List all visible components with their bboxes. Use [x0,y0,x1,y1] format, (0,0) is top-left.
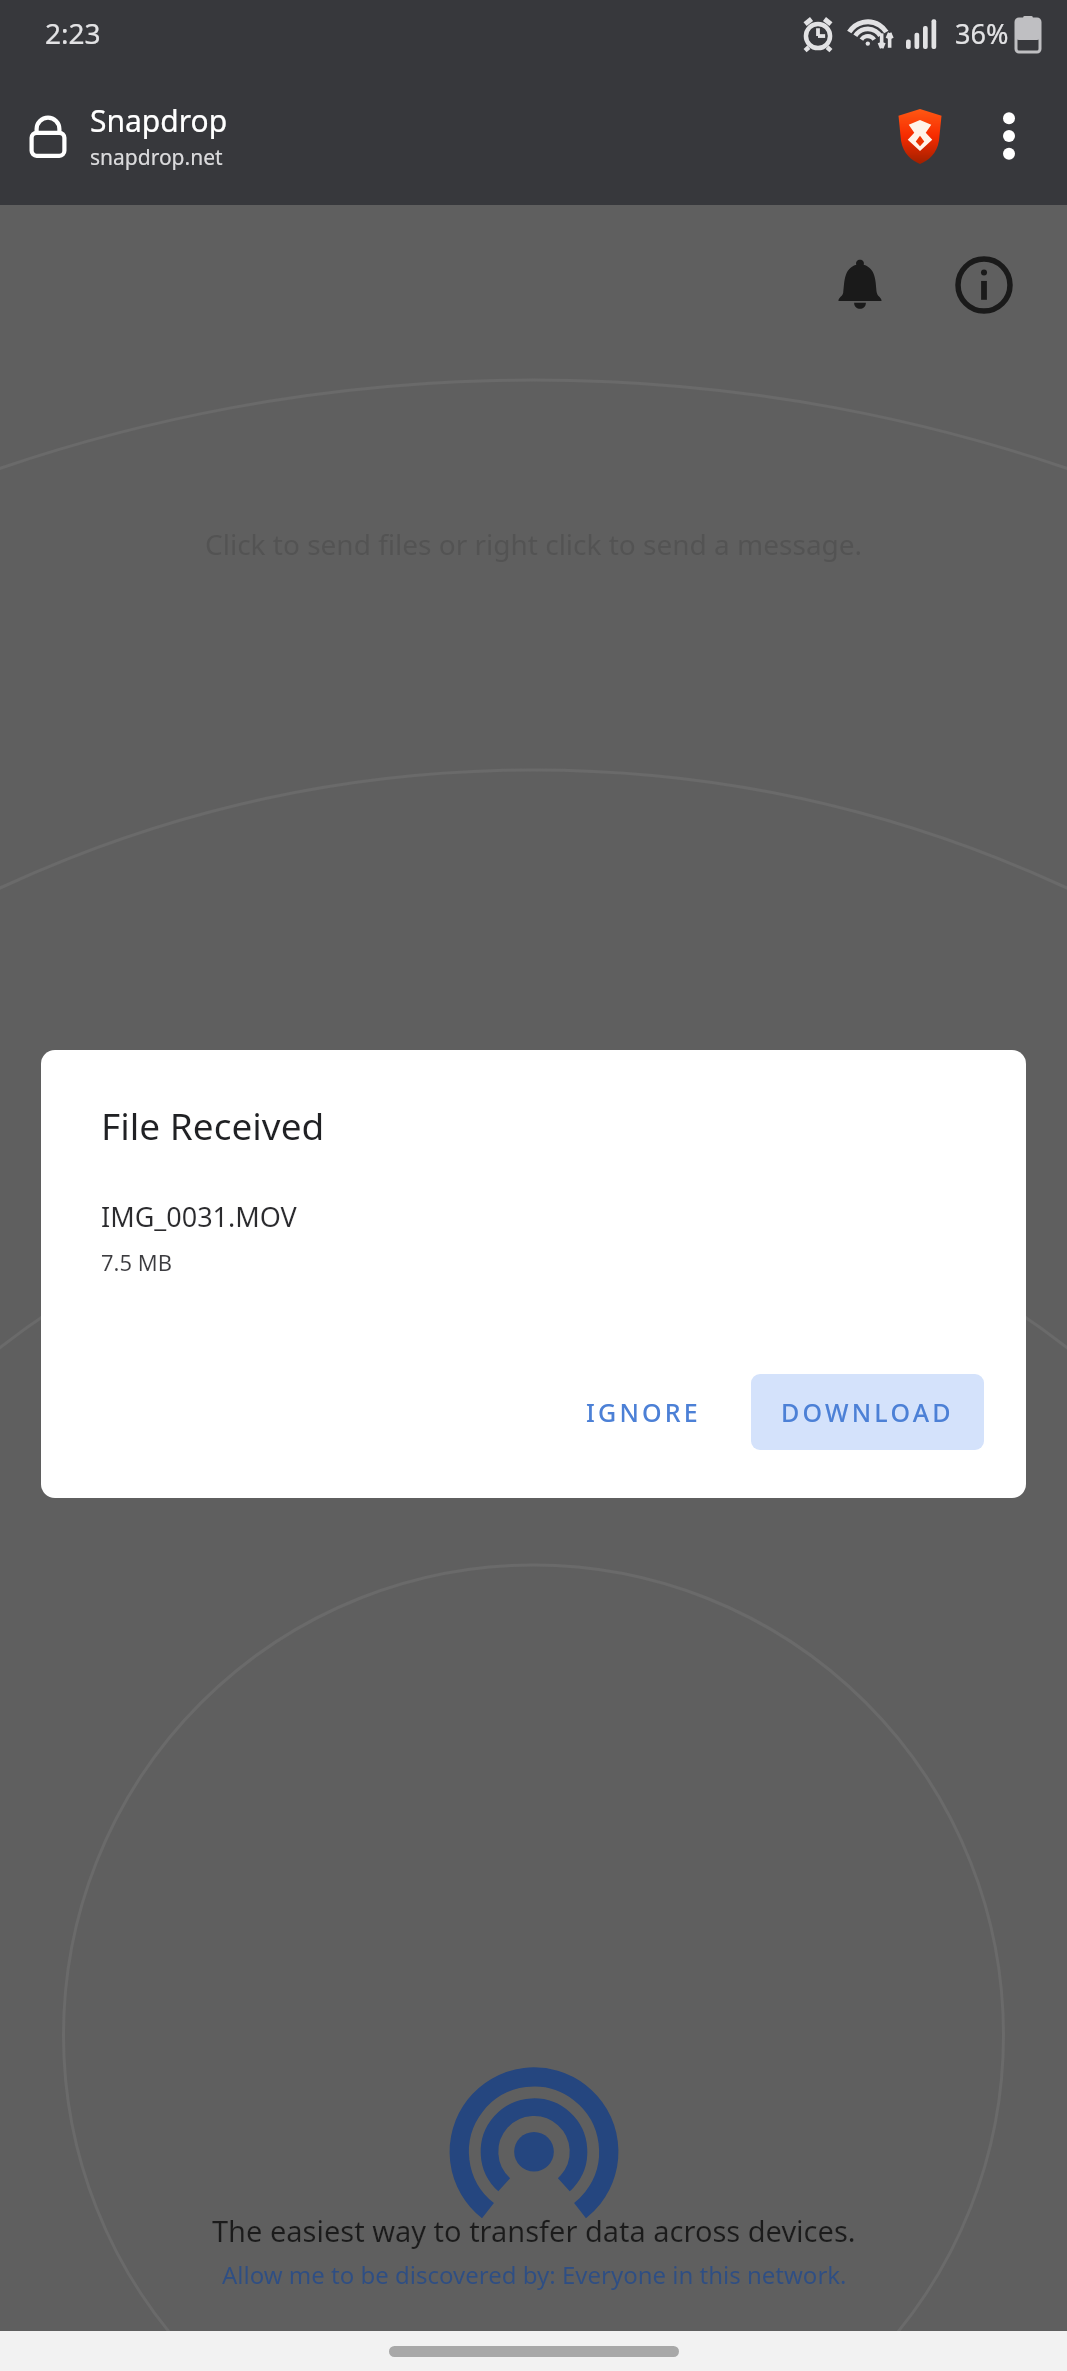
staticText: 36% [955,15,1009,52]
button[interactable]: DOWNLOAD [751,1374,984,1450]
button[interactable]: Brave Shields [881,97,959,175]
button[interactable]: IGNORE [560,1377,727,1447]
staticText: 2:23 [45,14,101,52]
staticText: File Received [101,1100,325,1150]
staticText: 7.5 MB [101,1247,173,1277]
staticText: IGNORE [586,1395,701,1429]
button[interactable]: Notifications [817,242,903,328]
staticText: Allow me to be discovered by: Everyone i… [222,2258,847,2291]
staticText: IMG_0031.MOV [101,1198,297,1235]
button[interactable]: About Snapdrop [941,242,1027,328]
staticText: Snapdrop [90,100,228,141]
staticText: Click to send files or right click to se… [205,525,863,563]
staticText: snapdrop.net [90,143,223,172]
button[interactable]: Allow me to be discovered by: Everyone i… [222,2258,847,2291]
button[interactable]: More options [973,100,1045,172]
staticText: The easiest way to transfer data across … [212,2211,856,2250]
staticText: DOWNLOAD [781,1395,954,1429]
